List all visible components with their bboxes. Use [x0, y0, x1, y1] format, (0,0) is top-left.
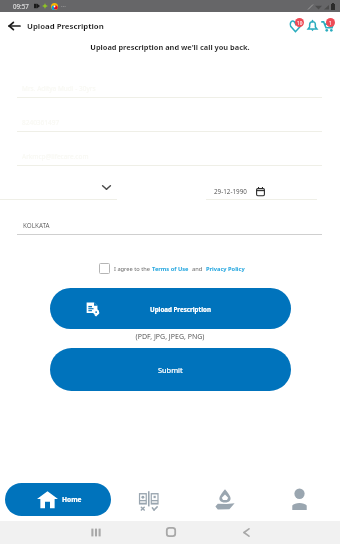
button[interactable]: Donate blood	[207, 483, 243, 516]
staticText: 09:57	[13, 2, 29, 10]
button[interactable]: Cart	[320, 17, 338, 35]
button[interactable]: Back	[0, 12, 27, 40]
button[interactable]: Terms of Use	[152, 265, 189, 273]
button[interactable]: Back	[230, 522, 262, 542]
button[interactable]: Select date	[206, 182, 317, 200]
staticText: Upload prescription and we'll call you b…	[0, 42, 340, 52]
button[interactable]: Compare	[131, 483, 167, 516]
button[interactable]: Wishlist	[287, 17, 305, 35]
staticText: I agree to the	[114, 265, 152, 273]
button[interactable]: Submit	[50, 348, 291, 391]
staticText: 29-12-1990	[214, 187, 247, 196]
staticText: and	[189, 265, 206, 273]
button[interactable]: Upload Prescription	[50, 288, 291, 329]
staticText: Upload Prescription	[150, 305, 211, 313]
staticText: 10	[297, 20, 303, 26]
staticText: Home	[62, 495, 82, 504]
staticText: Arkmcp@lifecare.com	[22, 152, 89, 161]
button[interactable]: Privacy Policy	[206, 265, 245, 273]
staticText: Submit	[158, 365, 183, 375]
staticText: ...	[61, 1, 66, 9]
button[interactable]: Home	[155, 522, 187, 542]
staticText: 8240361497	[22, 118, 60, 127]
staticText: KOLKATA	[23, 221, 50, 230]
button[interactable]: Notifications	[306, 19, 319, 32]
button[interactable]: Home	[5, 483, 111, 516]
button[interactable]: Agree to terms	[99, 263, 110, 274]
staticText: Mrs. Aditya Mudi - 30yrs	[22, 84, 96, 93]
staticText: Upload Prescription	[27, 21, 104, 32]
staticText: 1	[329, 20, 332, 26]
button[interactable]: Profile	[281, 483, 317, 516]
staticText: (PDF, JPG, JPEG, PNG)	[0, 332, 340, 342]
button[interactable]: KOLKATA	[17, 218, 323, 234]
button[interactable]: Select option	[0, 182, 117, 200]
button[interactable]: Recent apps	[80, 522, 112, 542]
